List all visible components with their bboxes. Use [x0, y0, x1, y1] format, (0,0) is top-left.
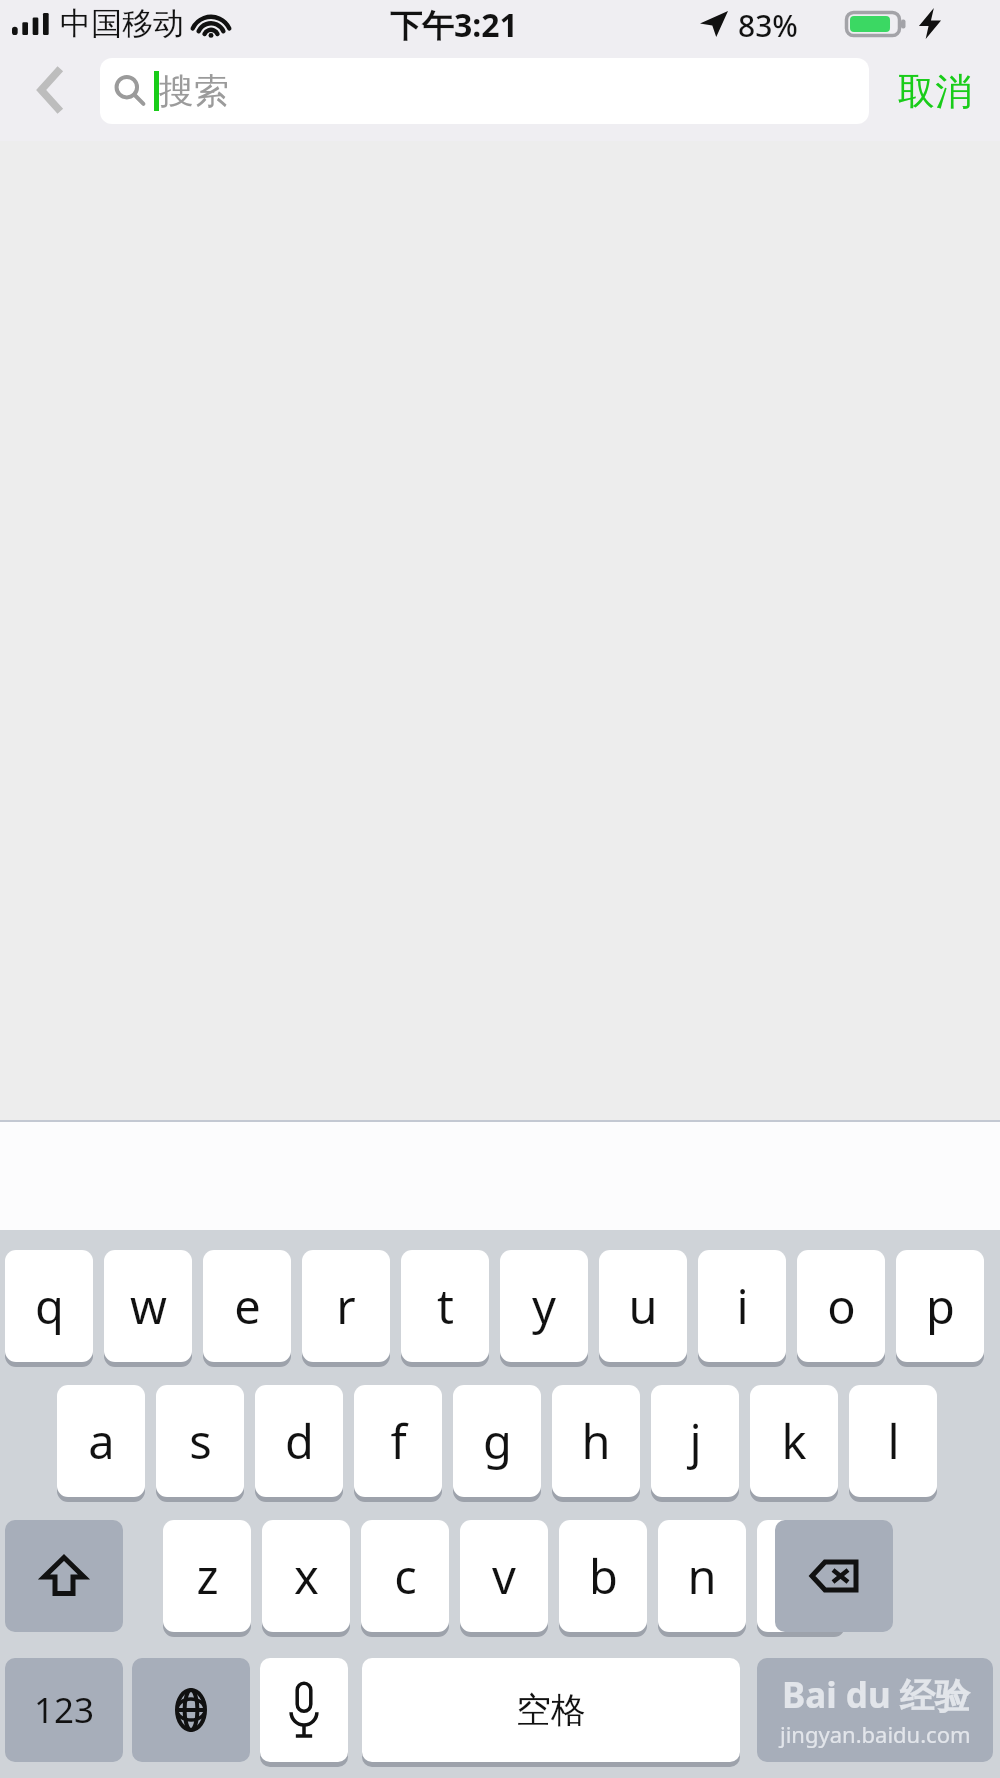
button[interactable]: y [500, 1250, 588, 1362]
button[interactable]: 123 [5, 1658, 123, 1762]
button[interactable]: 空格 [362, 1658, 740, 1762]
staticText: 取消 [898, 68, 972, 115]
button[interactable]: e [203, 1250, 291, 1362]
staticText: q [35, 1274, 64, 1338]
button[interactable]: v [460, 1520, 548, 1632]
button[interactable]: u [599, 1250, 687, 1362]
button[interactable]: d [255, 1385, 343, 1497]
button[interactable]: l [849, 1385, 937, 1497]
staticText: 搜索 [159, 69, 229, 113]
button[interactable]: 取消 [880, 52, 990, 130]
staticText: z [196, 1544, 219, 1608]
staticText: l [887, 1409, 900, 1473]
button[interactable]: f [354, 1385, 442, 1497]
button[interactable]: z [163, 1520, 251, 1632]
staticText: m [779, 1544, 823, 1608]
staticText: g [483, 1409, 512, 1473]
staticText: h [581, 1409, 611, 1473]
button[interactable]: s [156, 1385, 244, 1497]
staticText: 下午3:21 [390, 3, 518, 47]
staticText: k [781, 1409, 807, 1473]
button[interactable]: Shift [5, 1520, 123, 1632]
staticText: r [336, 1274, 356, 1338]
button[interactable]: m [757, 1520, 845, 1632]
staticText: j [689, 1409, 702, 1473]
button[interactable]: 搜索 [100, 58, 869, 124]
button[interactable]: x [262, 1520, 350, 1632]
staticText: i [736, 1274, 749, 1338]
button[interactable]: o [797, 1250, 885, 1362]
button[interactable]: i [698, 1250, 786, 1362]
staticText: x [294, 1544, 319, 1608]
button[interactable]: p [896, 1250, 984, 1362]
button[interactable]: a [57, 1385, 145, 1497]
staticText: b [589, 1544, 618, 1608]
staticText: 空格 [516, 1688, 586, 1732]
staticText: y [532, 1274, 556, 1338]
staticText: o [827, 1274, 856, 1338]
button[interactable]: w [104, 1250, 192, 1362]
button[interactable]: j [651, 1385, 739, 1497]
button[interactable]: n [658, 1520, 746, 1632]
staticText: c [394, 1544, 417, 1608]
button[interactable]: b [559, 1520, 647, 1632]
staticText: 中国移动 [60, 4, 184, 43]
button[interactable]: k [750, 1385, 838, 1497]
button[interactable]: Back [14, 56, 86, 124]
staticText: 83% [738, 5, 798, 46]
button[interactable]: Search [757, 1658, 993, 1762]
staticText: f [390, 1409, 407, 1473]
staticText: w [130, 1274, 167, 1338]
button[interactable]: g [453, 1385, 541, 1497]
button[interactable]: r [302, 1250, 390, 1362]
staticText: t [437, 1274, 454, 1338]
button[interactable]: Switch keyboard [132, 1658, 250, 1762]
staticText: jingyan.baidu.com [780, 1719, 971, 1749]
button[interactable]: h [552, 1385, 640, 1497]
button[interactable]: q [5, 1250, 93, 1362]
staticText: Bai du 经验 [782, 1671, 970, 1719]
button[interactable]: Voice input [260, 1658, 348, 1762]
staticText: a [88, 1409, 115, 1473]
staticText: s [189, 1409, 212, 1473]
staticText: d [285, 1409, 314, 1473]
button[interactable]: Delete [775, 1520, 893, 1632]
staticText: 123 [34, 1686, 95, 1734]
button[interactable]: c [361, 1520, 449, 1632]
staticText: p [926, 1274, 955, 1338]
staticText: v [492, 1544, 516, 1608]
staticText: e [234, 1274, 261, 1338]
staticText: u [628, 1274, 658, 1338]
staticText: n [687, 1544, 717, 1608]
button[interactable]: t [401, 1250, 489, 1362]
